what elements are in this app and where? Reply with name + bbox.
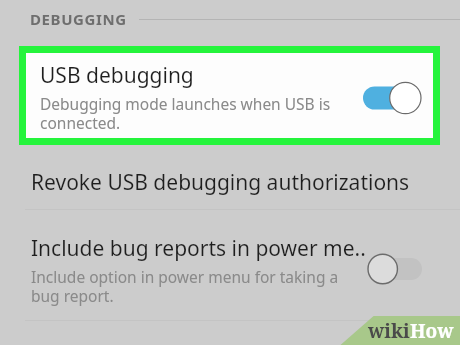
staticText: wiki bbox=[368, 318, 410, 344]
staticText: Include option in power menu for taking … bbox=[31, 266, 339, 306]
button[interactable]: USB debugging bbox=[19, 46, 440, 145]
staticText: Revoke USB debugging authorizations bbox=[31, 168, 410, 197]
staticText: Debugging mode launches when USB is conn… bbox=[40, 93, 331, 133]
button[interactable]: Revoke USB debugging authorizations bbox=[0, 155, 460, 209]
staticText: How bbox=[410, 318, 454, 344]
staticText: USB debugging bbox=[40, 61, 194, 90]
staticText: DEBUGGING bbox=[30, 9, 127, 29]
staticText: Include bug reports in power me.. bbox=[31, 234, 366, 263]
button[interactable]: USB debugging toggle, on bbox=[363, 81, 421, 115]
button[interactable]: Include bug reports in power menu toggle… bbox=[368, 253, 422, 285]
button[interactable]: Include bug reports in power me.. bbox=[0, 228, 460, 316]
